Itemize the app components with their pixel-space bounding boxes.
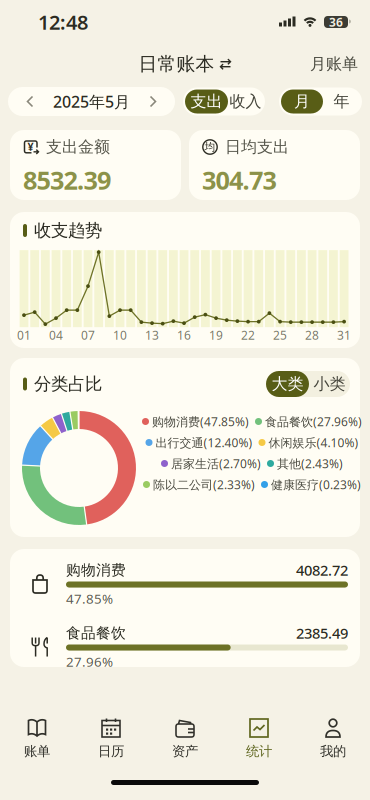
staticText: 支出	[190, 92, 222, 111]
staticText: 12:48	[38, 9, 88, 35]
staticText: 27.96%	[66, 653, 113, 670]
button[interactable]: 支出	[185, 89, 228, 113]
button[interactable]: 日历	[74, 717, 148, 759]
staticText: 19	[209, 327, 223, 343]
staticText: 01	[17, 327, 31, 343]
button[interactable]: 上一月	[8, 96, 34, 106]
staticText: 其他(2.43%)	[277, 455, 343, 471]
button[interactable]: 购物消费	[10, 563, 360, 604]
staticText: 07	[81, 327, 95, 343]
staticText: 年	[333, 92, 349, 111]
staticText: 04	[49, 327, 63, 343]
staticText: 支出金额	[46, 137, 110, 157]
staticText: 25	[273, 327, 287, 343]
staticText: 购物消费(47.85%)	[152, 413, 249, 429]
staticText: 日历	[98, 743, 124, 759]
staticText: 统计	[246, 743, 272, 759]
button[interactable]: 大类	[266, 371, 309, 397]
staticText: 大类	[271, 374, 303, 394]
staticText: 出行交通(12.40%)	[155, 434, 252, 450]
staticText: 均	[204, 140, 215, 153]
staticText: 账单	[24, 743, 50, 759]
staticText: 休闲娱乐(4.10%)	[268, 434, 358, 450]
button[interactable]: 月账单	[310, 54, 370, 74]
button[interactable]: 年	[323, 89, 360, 113]
button[interactable]: 食品餐饮	[10, 626, 360, 667]
button[interactable]: 收入	[228, 89, 263, 113]
staticText: 小类	[313, 374, 345, 394]
staticText: 食品餐饮	[66, 624, 126, 642]
staticText: 居家生活(2.70%)	[171, 455, 261, 471]
staticText: 食品餐饮(27.96%)	[265, 413, 362, 429]
button[interactable]: 统计	[222, 717, 296, 759]
staticText: 日均支出	[225, 137, 289, 157]
staticText: 4082.72	[296, 560, 348, 580]
button[interactable]: 日常账本	[138, 52, 231, 75]
staticText: ¥	[27, 139, 33, 154]
button[interactable]: 资产	[148, 717, 222, 759]
staticText: 16	[177, 327, 191, 343]
staticText: 8532.39	[23, 163, 111, 197]
staticText: 月账单	[310, 54, 358, 74]
staticText: 分类占比	[34, 373, 102, 395]
button[interactable]: 月	[281, 89, 323, 113]
staticText: 304.73	[202, 163, 276, 197]
staticText: 月	[294, 92, 310, 111]
button[interactable]: 小类	[309, 371, 350, 397]
staticText: 购物消费	[66, 561, 126, 579]
staticText: 陈以二公司(2.33%)	[153, 476, 255, 492]
staticText: 22	[241, 327, 255, 343]
staticText: 13	[145, 327, 159, 343]
staticText: 2025年5月	[53, 91, 130, 112]
staticText: 10	[113, 327, 127, 343]
staticText: 我的	[320, 743, 346, 759]
staticText: 28	[305, 327, 319, 343]
staticText: 收入	[229, 92, 261, 111]
staticText: 47.85%	[66, 590, 113, 607]
staticText: 2385.49	[296, 623, 348, 643]
staticText: 日常账本	[138, 52, 214, 75]
staticText: 36	[329, 14, 343, 30]
button[interactable]: 我的	[296, 717, 370, 759]
button[interactable]: 账单	[0, 717, 74, 759]
staticText: 资产	[172, 743, 198, 759]
staticText: 健康医疗(0.23%)	[271, 476, 361, 492]
staticText: 31	[337, 327, 351, 343]
button[interactable]: 下一月	[149, 96, 175, 106]
staticText: 收支趋势	[34, 220, 102, 241]
